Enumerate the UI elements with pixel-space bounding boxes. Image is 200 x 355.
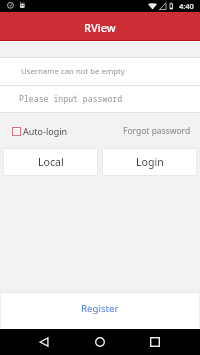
button[interactable]: Local	[3, 148, 98, 176]
button[interactable]: Home	[87, 329, 113, 355]
button[interactable]: Login	[102, 148, 197, 176]
button[interactable]: Recent apps	[142, 329, 168, 355]
staticText: Login	[136, 155, 164, 169]
staticText: Forgot password	[123, 125, 191, 137]
button[interactable]: Auto-login	[12, 125, 68, 137]
staticText: Local	[38, 155, 64, 169]
button[interactable]: Forgot password	[123, 125, 191, 137]
staticText: 4:40	[179, 1, 194, 11]
staticText: RView	[84, 20, 116, 35]
button[interactable]: Register	[1, 292, 199, 329]
button[interactable]: Back	[31, 329, 57, 355]
staticText: Please input password	[19, 93, 123, 104]
staticText: Register	[81, 302, 119, 315]
staticText: Username can not be empty	[21, 66, 125, 77]
button[interactable]: Please input password	[0, 86, 200, 113]
button[interactable]: Username can not be empty	[0, 58, 200, 86]
staticText: Auto-login	[23, 125, 68, 137]
